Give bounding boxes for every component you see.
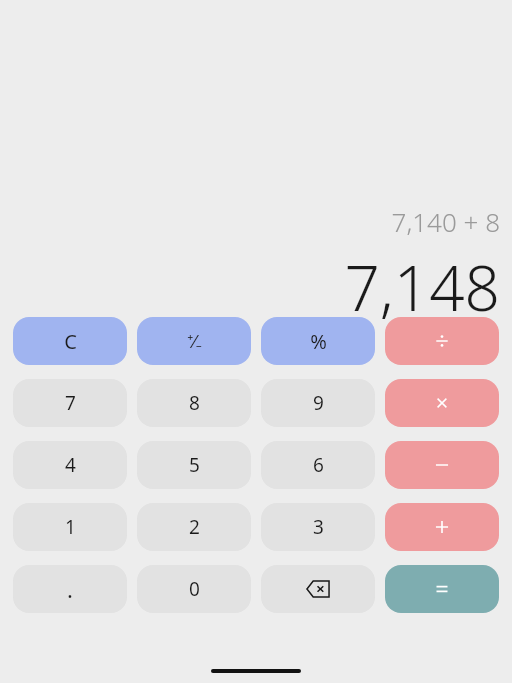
button[interactable]: Divide [385, 317, 499, 365]
button[interactable]: ⁺⁄₋ [137, 317, 251, 365]
button[interactable]: 3 [261, 503, 375, 551]
staticText: 7 [65, 390, 76, 416]
staticText: % [310, 328, 327, 355]
button[interactable]: 8 [137, 379, 251, 427]
button[interactable]: Subtract [385, 441, 499, 489]
button[interactable]: Equals [385, 565, 499, 613]
button[interactable]: Multiply [385, 379, 499, 427]
button[interactable]: Backspace [261, 565, 375, 613]
staticText: 6 [313, 452, 324, 478]
staticText: ⁺⁄₋ [187, 329, 202, 354]
staticText: 8 [189, 390, 200, 416]
staticText: 2 [189, 514, 200, 540]
staticText: 9 [313, 390, 324, 416]
button[interactable]: 6 [261, 441, 375, 489]
staticText: . [67, 574, 73, 604]
button[interactable]: 5 [137, 441, 251, 489]
button[interactable]: Add [385, 503, 499, 551]
button[interactable]: C [13, 317, 127, 365]
staticText: 5 [189, 452, 200, 478]
button[interactable]: 9 [261, 379, 375, 427]
button[interactable]: 1 [13, 503, 127, 551]
staticText: 1 [65, 514, 76, 540]
staticText: 7,140 + 8 [0, 204, 500, 239]
button[interactable]: % [261, 317, 375, 365]
button[interactable]: 7 [13, 379, 127, 427]
staticText: 3 [313, 514, 324, 540]
staticText: 7,148 [0, 245, 500, 329]
button[interactable]: 2 [137, 503, 251, 551]
staticText: 0 [189, 576, 200, 602]
staticText: C [64, 328, 77, 355]
button[interactable]: 0 [137, 565, 251, 613]
staticText: 4 [65, 452, 76, 478]
button[interactable]: . [13, 565, 127, 613]
button[interactable]: 4 [13, 441, 127, 489]
